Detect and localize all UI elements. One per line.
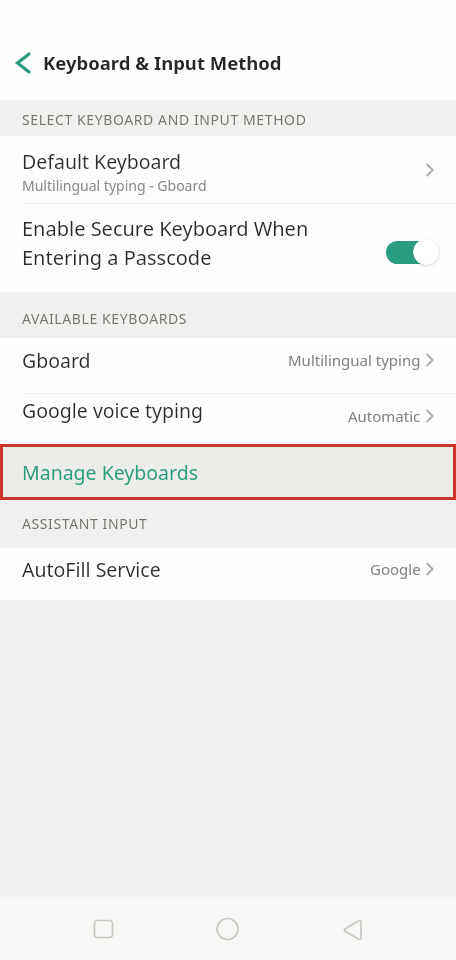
button[interactable]: Manage Keyboards: [0, 444, 456, 500]
button[interactable]: [386, 239, 439, 265]
staticText: AutoFill Service: [22, 556, 161, 583]
staticText: Gboard: [22, 347, 91, 374]
staticText: Multilingual typing: [288, 350, 421, 370]
staticText: ASSISTANT INPUT: [22, 514, 148, 533]
button[interactable]: Google voice typing: [0, 394, 456, 444]
staticText: Default Keyboard: [22, 148, 182, 175]
staticText: Google: [370, 559, 421, 579]
staticText: AVAILABLE KEYBOARDS: [22, 309, 188, 328]
staticText: Multilingual typing - Gboard: [22, 176, 207, 195]
staticText: Enable Secure Keyboard When: [22, 215, 309, 242]
staticText: Google voice typing: [22, 397, 204, 424]
button[interactable]: AutoFill Service: [0, 548, 456, 600]
staticText: Keyboard & Input Method: [43, 50, 282, 75]
button[interactable]: [0, 897, 152, 960]
button[interactable]: Default Keyboard: [0, 136, 456, 204]
staticText: Entering a Passcode: [22, 244, 212, 271]
button[interactable]: Keyboard & Input Method: [0, 45, 456, 100]
button[interactable]: [152, 897, 304, 960]
button[interactable]: Gboard: [0, 338, 456, 394]
button[interactable]: [304, 897, 456, 960]
button[interactable]: Enable Secure Keyboard When: [0, 204, 456, 292]
staticText: Manage Keyboards: [22, 459, 199, 486]
staticText: Automatic: [348, 406, 421, 426]
staticText: SELECT KEYBOARD AND INPUT METHOD: [22, 110, 307, 129]
